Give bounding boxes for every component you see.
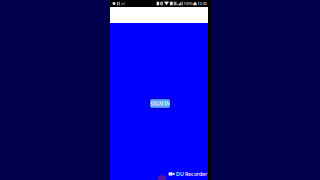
staticText: 12:30: [197, 1, 206, 6]
button[interactable]: Recorder controls: [158, 175, 166, 180]
button[interactable]: SIGN IN: [150, 99, 170, 108]
staticText: SIGN IN: [150, 100, 170, 107]
staticText: DU Recorder: [176, 170, 207, 177]
staticText: 100%: [183, 1, 192, 6]
